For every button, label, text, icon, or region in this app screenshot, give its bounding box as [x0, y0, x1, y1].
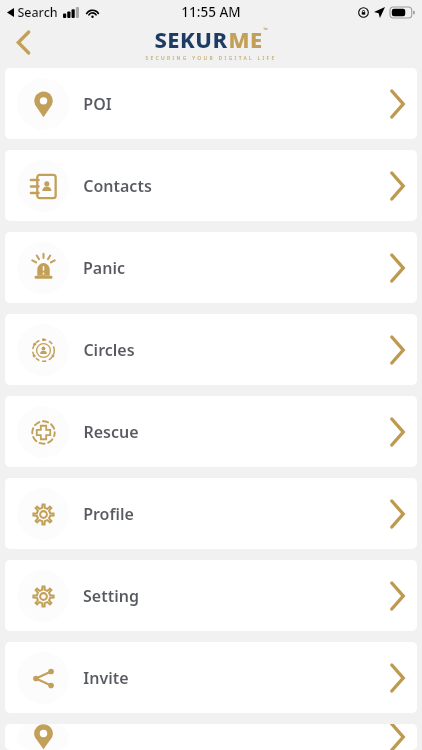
- staticText: Search: [17, 4, 58, 21]
- staticText: ME: [228, 24, 263, 54]
- button[interactable]: Circles: [5, 314, 417, 385]
- button[interactable]: Panic: [5, 232, 417, 303]
- button[interactable]: Contacts: [5, 150, 417, 221]
- staticText: 11:55 AM: [181, 3, 241, 21]
- staticText: POI: [83, 93, 112, 115]
- button[interactable]: [5, 724, 417, 750]
- staticText: Setting: [83, 585, 139, 607]
- button[interactable]: Profile: [5, 478, 417, 549]
- staticText: Profile: [83, 503, 134, 525]
- staticText: Circles: [83, 339, 135, 361]
- button[interactable]: Invite: [5, 642, 417, 713]
- staticText: SECURING YOUR DIGITAL LIFE: [145, 55, 277, 61]
- button[interactable]: Setting: [5, 560, 417, 631]
- button[interactable]: POI: [5, 68, 417, 139]
- staticText: SEKUR: [154, 24, 228, 54]
- button[interactable]: Back: [0, 24, 46, 61]
- staticText: Invite: [83, 667, 129, 689]
- button[interactable]: Rescue: [5, 396, 417, 467]
- staticText: ™: [263, 26, 268, 34]
- staticText: Panic: [83, 257, 125, 279]
- staticText: Rescue: [83, 421, 139, 443]
- staticText: Contacts: [83, 175, 152, 197]
